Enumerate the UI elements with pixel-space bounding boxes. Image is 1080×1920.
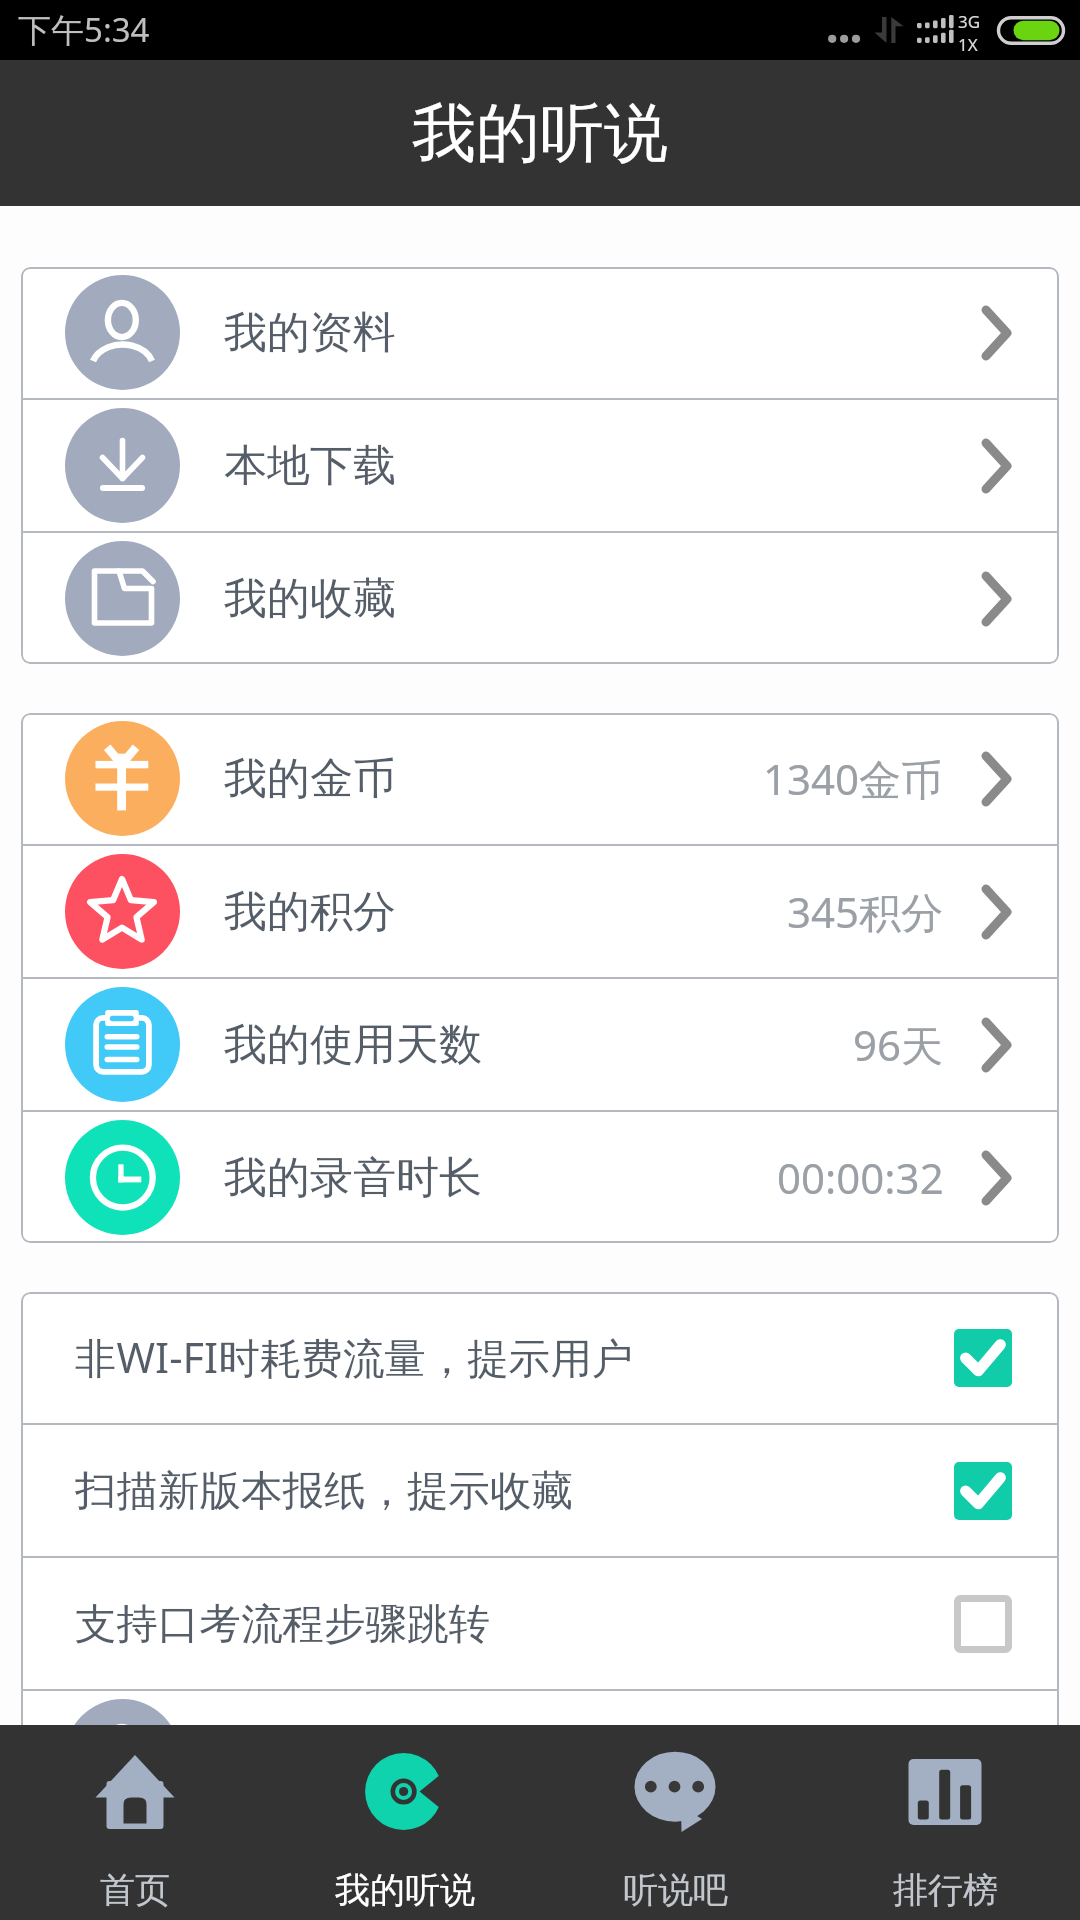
staticText: 扫描新版本报纸，提示收藏	[75, 1465, 573, 1517]
button[interactable]: Ranking	[810, 1725, 1080, 1920]
button[interactable]: 意见反馈	[21, 1824, 1059, 1920]
other: Checked	[954, 1329, 1012, 1387]
button[interactable]: 我的资料	[21, 267, 1059, 398]
staticText: 我的听说	[412, 93, 668, 174]
other: Home	[93, 1751, 177, 1835]
staticText: 我的使用天数	[224, 1018, 482, 1072]
staticText: 我的资料	[224, 306, 396, 360]
button[interactable]: Home	[0, 1725, 270, 1920]
staticText: 账号设置	[224, 1730, 396, 1784]
staticText: 非WI-FI时耗费流量，提示用户	[75, 1329, 634, 1386]
staticText: 本地下载	[224, 439, 396, 493]
staticText: 我的积分	[224, 885, 396, 939]
staticText: 345积分	[787, 883, 944, 940]
staticText: 我的收藏	[224, 572, 396, 626]
staticText: 我的金币	[224, 752, 396, 806]
button[interactable]: Community	[540, 1725, 810, 1920]
staticText: 00:00:32	[777, 1149, 944, 1206]
other: My listening	[363, 1751, 447, 1835]
other: Checked	[954, 1462, 1012, 1520]
other: Ranking	[903, 1751, 987, 1835]
staticText: 排行榜	[893, 1868, 998, 1912]
button[interactable]: 我的积分	[21, 846, 1059, 977]
staticText: 下午5:34	[18, 7, 150, 52]
staticText: 我的听说	[335, 1868, 475, 1912]
staticText: 支持口考流程步骤跳转	[75, 1598, 490, 1650]
staticText: 1X	[958, 33, 978, 56]
button[interactable]: 我的收藏	[21, 533, 1059, 664]
button[interactable]: 非WI-FI时耗费流量，提示用户	[21, 1292, 1059, 1423]
button[interactable]: 我的金币	[21, 713, 1059, 844]
staticText: 96天	[853, 1016, 944, 1073]
button[interactable]: 我的使用天数	[21, 979, 1059, 1110]
button[interactable]: My listening	[270, 1725, 540, 1920]
staticText: 3G	[958, 10, 981, 33]
button[interactable]: 支持口考流程步骤跳转	[21, 1558, 1059, 1689]
staticText: 听说吧	[623, 1868, 728, 1912]
button[interactable]: 账号设置	[21, 1691, 1059, 1822]
staticText: 意见反馈	[224, 1863, 396, 1917]
other: Community	[633, 1751, 717, 1835]
button[interactable]: 扫描新版本报纸，提示收藏	[21, 1425, 1059, 1556]
other: Unchecked	[954, 1595, 1012, 1653]
staticText: 1340金币	[763, 750, 944, 807]
staticText: 首页	[100, 1868, 170, 1912]
button[interactable]: 我的录音时长	[21, 1112, 1059, 1243]
staticText: 我的录音时长	[224, 1151, 482, 1205]
button[interactable]: 本地下载	[21, 400, 1059, 531]
